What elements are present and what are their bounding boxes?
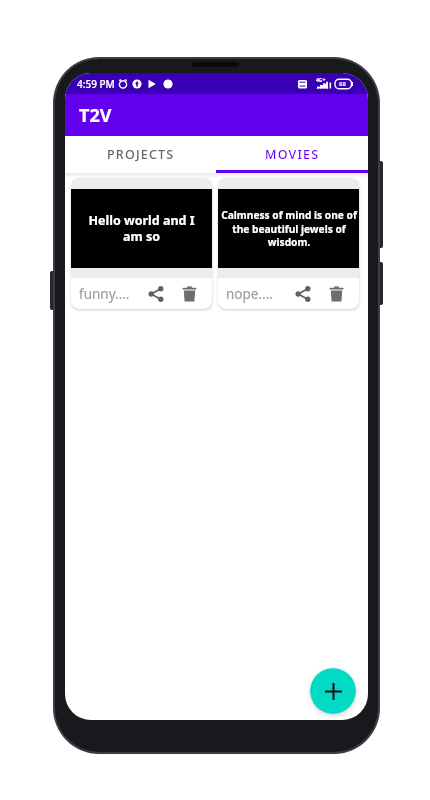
staticText: Hello world and I am so	[88, 212, 195, 245]
staticText: 88	[339, 80, 346, 88]
staticText: nope....	[226, 285, 273, 303]
button[interactable]: PROJECTS	[65, 136, 216, 173]
staticText: 4G+	[316, 77, 326, 84]
button[interactable]	[329, 286, 344, 302]
staticText: Calmness of mind is one of the beautiful…	[221, 208, 357, 249]
button[interactable]	[148, 286, 164, 302]
button[interactable]: MOVIES	[216, 136, 368, 173]
staticText: T2V	[79, 103, 112, 128]
staticText: funny....	[79, 285, 130, 303]
staticText: PROJECTS	[107, 146, 175, 163]
button[interactable]	[182, 286, 197, 302]
staticText: 4:59 PM	[77, 77, 115, 91]
button[interactable]: Calmness of mind is one of the beautiful…	[218, 178, 359, 309]
staticText: MOVIES	[265, 146, 320, 163]
button[interactable]	[295, 286, 311, 302]
button[interactable]: Hello world and I am so	[71, 178, 212, 309]
button[interactable]	[310, 668, 356, 714]
